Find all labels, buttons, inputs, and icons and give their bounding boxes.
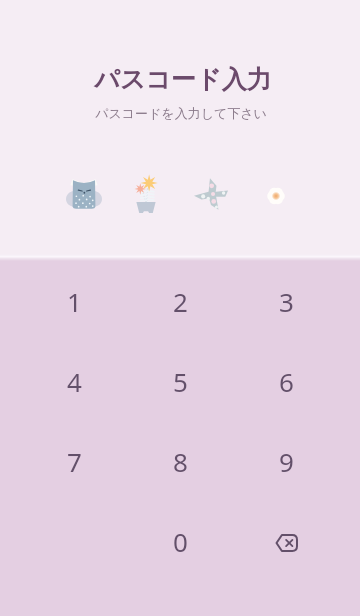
staticText: 5: [173, 364, 188, 399]
button[interactable]: 3: [233, 263, 339, 343]
staticText: 0: [173, 524, 188, 559]
button[interactable]: Backspace: [233, 503, 339, 583]
other: Backspace: [269, 526, 303, 560]
staticText: 9: [279, 444, 294, 479]
button[interactable]: 1: [21, 263, 127, 343]
staticText: 4: [67, 364, 82, 399]
staticText: 2: [173, 284, 188, 319]
staticText: 3: [279, 284, 294, 319]
button[interactable]: 6: [233, 343, 339, 423]
button[interactable]: 2: [127, 263, 233, 343]
button[interactable]: 5: [127, 343, 233, 423]
button[interactable]: 9: [233, 423, 339, 503]
staticText: 1: [67, 284, 82, 319]
staticText: 7: [67, 444, 82, 479]
button[interactable]: 7: [21, 423, 127, 503]
staticText: 8: [173, 444, 188, 479]
staticText: パスコード入力: [3, 64, 360, 95]
button[interactable]: 4: [21, 343, 127, 423]
button[interactable]: 0: [127, 503, 233, 583]
staticText: パスコードを入力して下さい: [1, 105, 360, 121]
button[interactable]: 8: [127, 423, 233, 503]
staticText: 6: [279, 364, 294, 399]
